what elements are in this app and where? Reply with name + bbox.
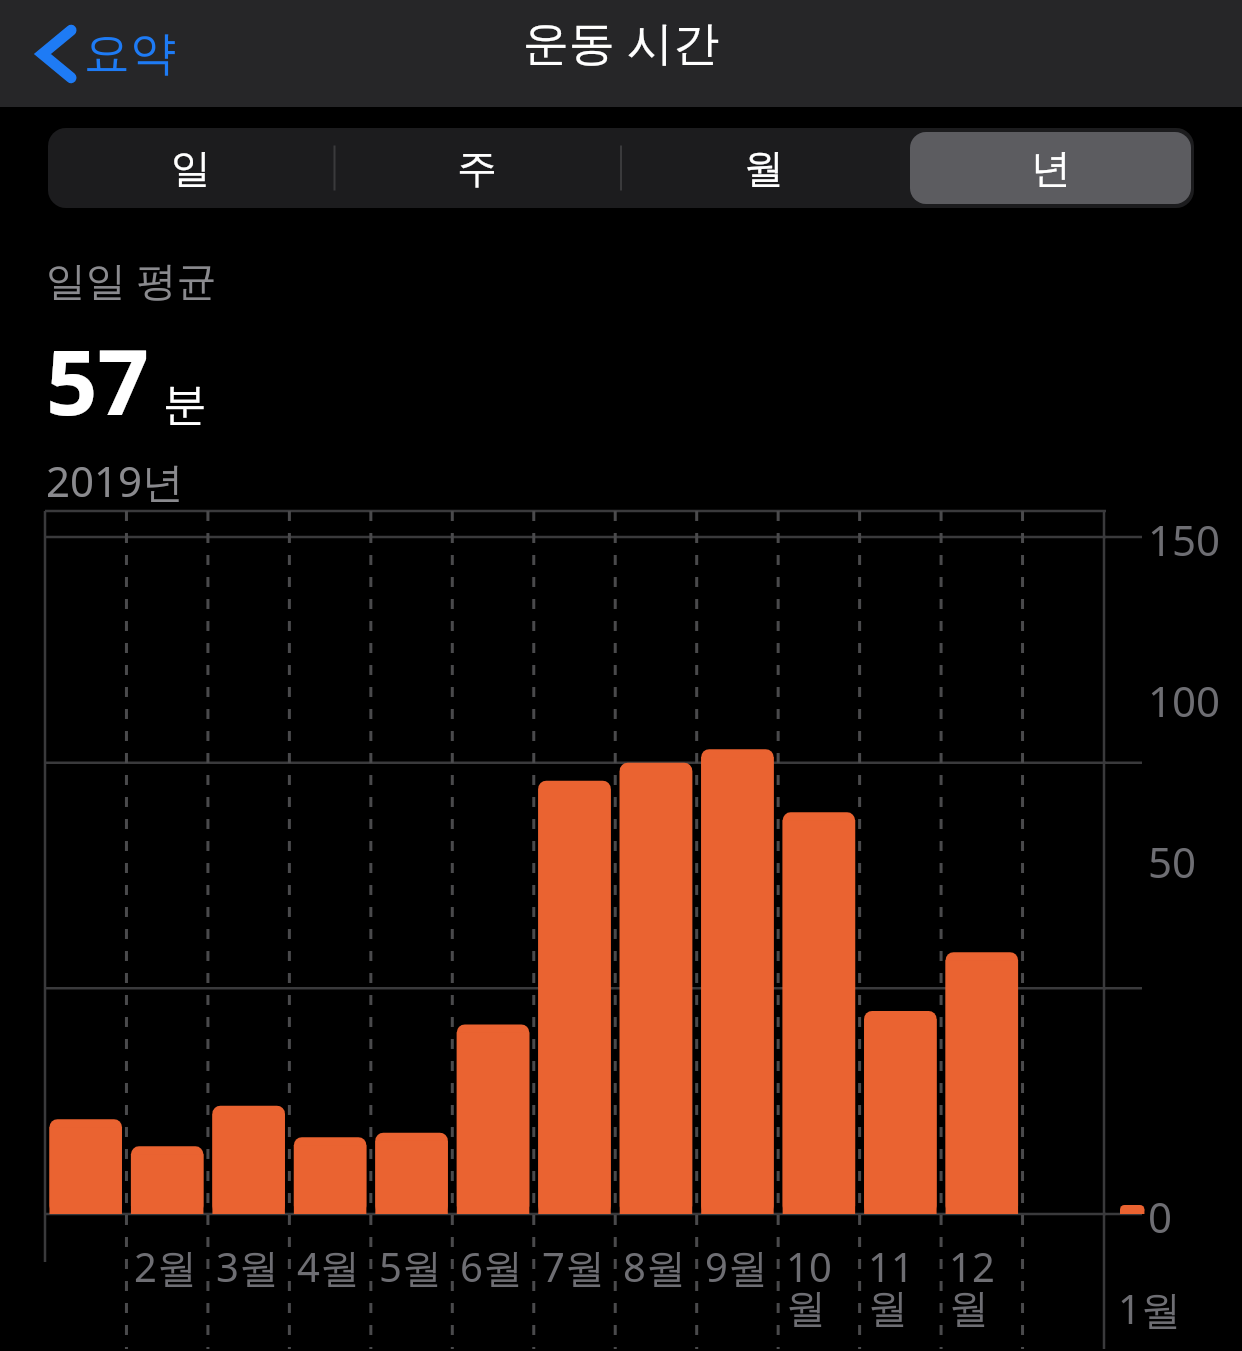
staticText: 8월 xyxy=(623,1239,686,1294)
button[interactable]: 일 xyxy=(51,132,331,204)
staticText: 2월 xyxy=(134,1239,197,1294)
staticText: 년 xyxy=(1031,143,1071,193)
staticText: 4월 xyxy=(297,1239,360,1294)
staticText: 주 xyxy=(457,143,497,193)
button[interactable]: 월 xyxy=(623,132,904,204)
staticText: 12 월 xyxy=(949,1239,995,1334)
button[interactable]: 주 xyxy=(337,132,617,204)
staticText: 150 xyxy=(1148,511,1221,568)
staticText: 일일 평균 xyxy=(46,252,217,307)
staticText: 0 xyxy=(1148,1188,1173,1245)
staticText: 10 월 xyxy=(786,1239,832,1334)
staticText: 3월 xyxy=(216,1239,279,1294)
staticText: 7월 xyxy=(542,1239,605,1294)
button[interactable]: 년 xyxy=(910,132,1191,204)
staticText: 11 월 xyxy=(868,1239,914,1334)
staticText: 50 xyxy=(1148,833,1197,890)
staticText: 1월 xyxy=(1118,1281,1181,1336)
staticText: 6월 xyxy=(460,1239,523,1294)
staticText: 요약 xyxy=(84,25,176,83)
button[interactable]: 요약 xyxy=(30,19,184,89)
staticText: 100 xyxy=(1148,672,1221,729)
staticText: 분 xyxy=(163,377,207,432)
staticText: 9월 xyxy=(705,1239,768,1294)
staticText: 일 xyxy=(171,143,211,193)
staticText: 운동 시간 xyxy=(523,10,719,73)
staticText: 5월 xyxy=(379,1239,442,1294)
staticText: 월 xyxy=(744,143,784,193)
staticText: 57 xyxy=(46,319,149,442)
staticText: 2019년 xyxy=(46,452,185,509)
